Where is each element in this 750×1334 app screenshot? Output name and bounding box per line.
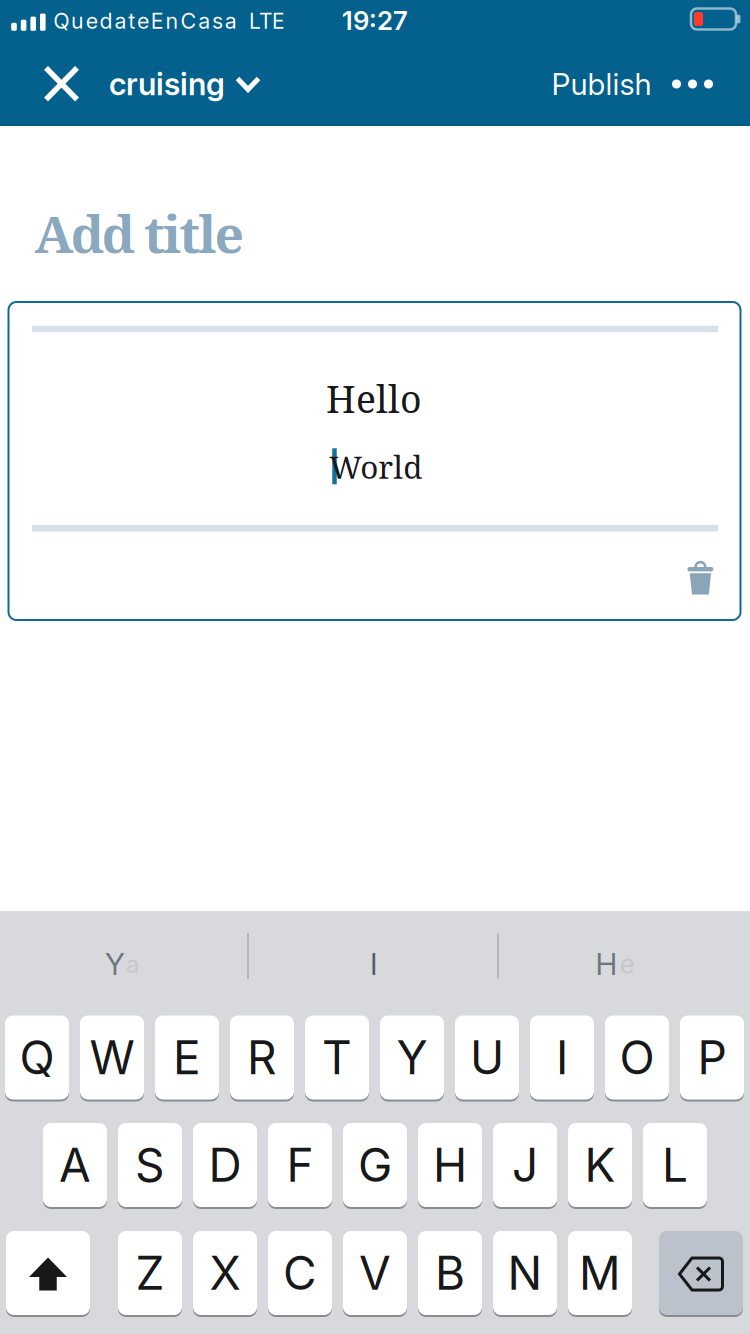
staticText: Y: [105, 946, 125, 982]
staticText: e: [619, 948, 634, 980]
staticText: Hello: [326, 373, 422, 424]
staticText: H: [433, 1137, 467, 1193]
button[interactable]: D: [193, 1123, 257, 1209]
button[interactable]: T: [305, 1015, 369, 1101]
button[interactable]: S: [118, 1123, 182, 1209]
button[interactable]: U: [455, 1015, 519, 1101]
button[interactable]: V: [343, 1231, 407, 1317]
staticText: P: [697, 1030, 726, 1085]
staticText: V: [359, 1245, 391, 1301]
button[interactable]: Y: [105, 946, 139, 982]
staticText: A: [59, 1137, 91, 1193]
staticText: R: [247, 1030, 277, 1085]
staticText: C: [283, 1245, 317, 1301]
staticText: a: [126, 949, 139, 978]
button[interactable]: I: [530, 1015, 594, 1101]
button[interactable]: M: [568, 1231, 632, 1317]
staticText: cruising: [109, 65, 225, 103]
button[interactable]: C: [268, 1231, 332, 1317]
button[interactable]: R: [230, 1015, 294, 1101]
staticText: Publish: [551, 66, 651, 102]
staticText: L: [662, 1137, 688, 1193]
button[interactable]: Close: [39, 62, 83, 106]
button[interactable]: Delete: [659, 1231, 743, 1317]
button[interactable]: H: [418, 1123, 482, 1209]
staticText: Y: [396, 1030, 427, 1085]
button[interactable]: More options: [672, 79, 713, 88]
button[interactable]: Y: [380, 1015, 444, 1101]
staticText: I: [370, 946, 378, 982]
button[interactable]: Shift: [6, 1231, 90, 1317]
button[interactable]: cruising: [109, 65, 259, 103]
button[interactable]: X: [193, 1231, 257, 1317]
button[interactable]: E: [155, 1015, 219, 1101]
button[interactable]: A: [43, 1123, 107, 1209]
staticText: Z: [135, 1245, 164, 1301]
staticText: S: [135, 1137, 165, 1193]
button[interactable]: G: [343, 1123, 407, 1209]
button[interactable]: O: [605, 1015, 669, 1101]
button[interactable]: Q: [5, 1015, 69, 1101]
staticText: D: [208, 1137, 241, 1193]
staticText: F: [286, 1137, 313, 1193]
button[interactable]: K: [568, 1123, 632, 1209]
button[interactable]: L: [643, 1123, 707, 1209]
staticText: World: [329, 445, 422, 488]
button[interactable]: F: [268, 1123, 332, 1209]
button[interactable]: B: [418, 1231, 482, 1317]
staticText: K: [584, 1137, 615, 1193]
button[interactable]: P: [680, 1015, 744, 1101]
button[interactable]: H: [595, 946, 634, 982]
staticText: LTE: [249, 8, 285, 34]
staticText: O: [619, 1030, 654, 1085]
staticText: J: [512, 1137, 538, 1193]
staticText: 19:27: [342, 5, 408, 36]
staticText: I: [556, 1030, 568, 1085]
staticText: G: [358, 1137, 392, 1193]
staticText: T: [322, 1030, 352, 1085]
button[interactable]: W: [80, 1015, 144, 1101]
button[interactable]: Z: [118, 1231, 182, 1317]
staticText: Add title: [35, 198, 243, 268]
button[interactable]: I: [370, 946, 378, 982]
staticText: B: [435, 1245, 465, 1301]
button[interactable]: Delete block: [685, 560, 715, 598]
staticText: U: [470, 1030, 504, 1085]
staticText: W: [89, 1030, 134, 1085]
staticText: E: [173, 1030, 201, 1085]
staticText: N: [507, 1245, 542, 1301]
staticText: QuedateEnCasa: [53, 8, 237, 34]
button[interactable]: N: [493, 1231, 557, 1317]
staticText: H: [595, 946, 617, 982]
button[interactable]: Publish: [551, 66, 651, 102]
staticText: Q: [19, 1030, 54, 1085]
staticText: M: [579, 1245, 621, 1301]
staticText: X: [209, 1245, 240, 1301]
button[interactable]: J: [493, 1123, 557, 1209]
